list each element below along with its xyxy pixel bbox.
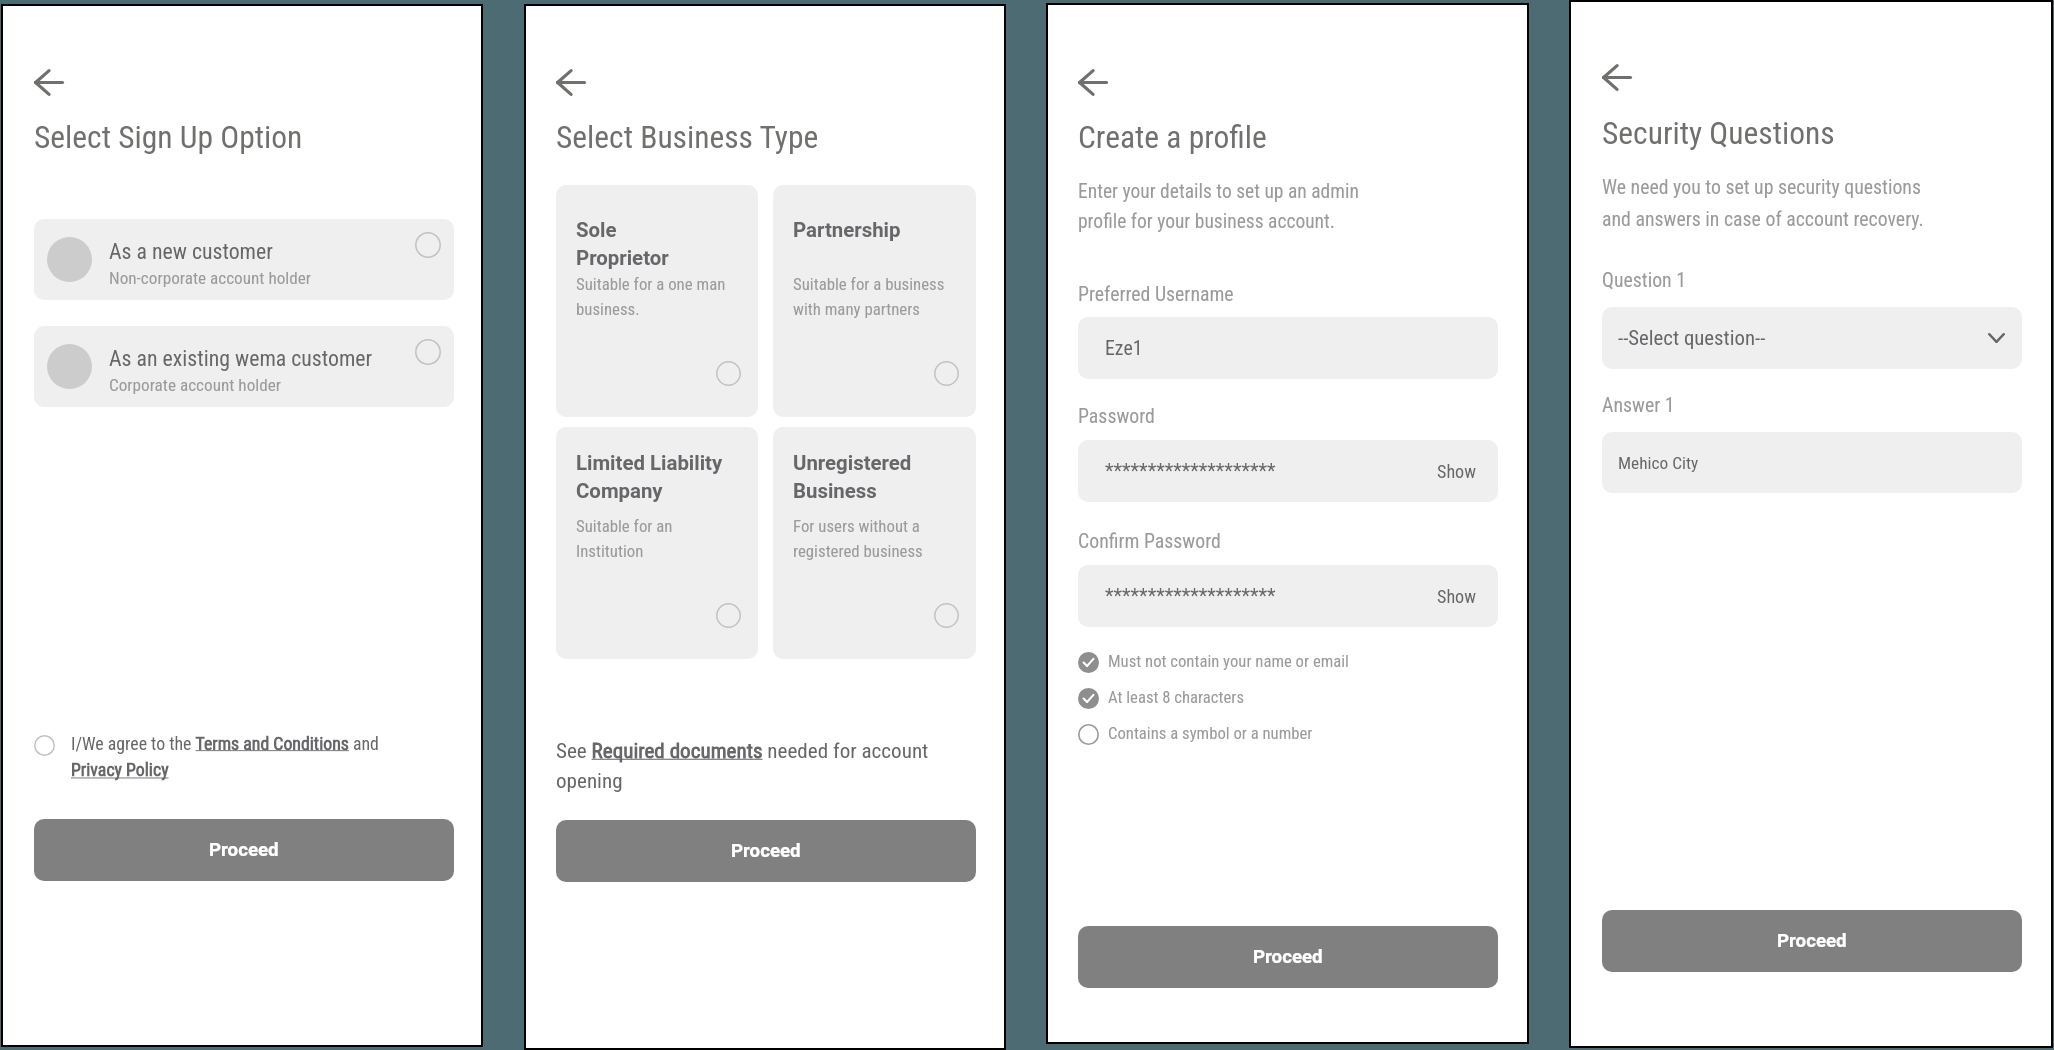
staticText: Preferred Username bbox=[1078, 283, 1234, 306]
button[interactable]: Back bbox=[34, 69, 63, 96]
button[interactable]: Select option bbox=[716, 361, 741, 386]
button[interactable]: Sole Proprietor bbox=[556, 185, 758, 417]
staticText: As a new customer bbox=[109, 239, 273, 265]
staticText: For users without a registered business bbox=[793, 516, 970, 561]
staticText: Must not contain your name or email bbox=[1108, 652, 1349, 672]
button[interactable]: Back bbox=[556, 69, 585, 96]
button[interactable]: Unregistered Business bbox=[773, 427, 976, 659]
staticText: At least 8 characters bbox=[1108, 688, 1245, 708]
staticText: Proceed bbox=[209, 839, 279, 861]
button[interactable]: Select option bbox=[716, 603, 741, 628]
staticText: Answer 1 bbox=[1602, 394, 1675, 417]
staticText: We need you to set up security questions… bbox=[1602, 176, 1924, 231]
staticText: Show bbox=[1437, 461, 1476, 482]
staticText: --Select question-- bbox=[1618, 326, 1988, 350]
button[interactable]: Proceed bbox=[556, 820, 976, 882]
button[interactable]: Select option bbox=[415, 232, 441, 258]
button[interactable]: Select option bbox=[934, 603, 959, 628]
button[interactable]: Select option bbox=[934, 361, 959, 386]
staticText: Select Sign Up Option bbox=[34, 119, 303, 156]
staticText: Enter your details to set up an admin pr… bbox=[1078, 180, 1359, 233]
button[interactable]: Select option bbox=[415, 339, 441, 365]
button[interactable]: Contains a symbol or a number bbox=[1078, 716, 1498, 752]
staticText: Non-corporate account holder bbox=[109, 268, 312, 288]
staticText: Eze1 bbox=[1105, 337, 1143, 360]
staticText: Partnership bbox=[793, 218, 901, 242]
staticText: Suitable for a one man business. bbox=[576, 274, 752, 319]
staticText: Mehico City bbox=[1618, 453, 1699, 473]
staticText: Limited Liability Company bbox=[576, 451, 723, 503]
button[interactable]: Proceed bbox=[1078, 926, 1498, 988]
button[interactable]: Select option bbox=[34, 735, 55, 756]
button[interactable]: ******************** bbox=[1078, 565, 1498, 627]
staticText: Contains a symbol or a number bbox=[1108, 724, 1313, 744]
staticText: ******************** bbox=[1105, 585, 1437, 608]
staticText: Corporate account holder bbox=[109, 375, 282, 395]
button[interactable]: Back bbox=[1078, 69, 1107, 96]
staticText: Unregistered Business bbox=[793, 451, 912, 503]
button[interactable]: Proceed bbox=[34, 819, 454, 881]
button[interactable]: Partnership bbox=[773, 185, 976, 417]
other: Expand dropdown bbox=[1988, 333, 2005, 343]
staticText: Suitable for an Institution bbox=[576, 516, 673, 561]
staticText: Suitable for a business with many partne… bbox=[793, 274, 970, 319]
button[interactable]: At least 8 characters bbox=[1078, 680, 1498, 716]
button[interactable]: As an existing wema customer bbox=[34, 326, 454, 407]
button[interactable]: Proceed bbox=[1602, 910, 2022, 972]
button[interactable]: Limited Liability Company bbox=[556, 427, 758, 659]
staticText: Create a profile bbox=[1078, 119, 1267, 156]
button[interactable]: Back bbox=[1602, 64, 1631, 91]
staticText: ******************** bbox=[1105, 460, 1437, 483]
staticText: Security Questions bbox=[1602, 115, 1835, 152]
staticText: Sole Proprietor bbox=[576, 218, 669, 270]
staticText: Proceed bbox=[1777, 930, 1847, 952]
button[interactable]: Eze1 bbox=[1078, 317, 1498, 379]
staticText: Select Business Type bbox=[556, 119, 819, 156]
staticText: Proceed bbox=[731, 840, 801, 862]
staticText: Proceed bbox=[1253, 946, 1323, 968]
button[interactable]: ******************** bbox=[1078, 440, 1498, 502]
staticText: Password bbox=[1078, 405, 1155, 428]
button[interactable]: As a new customer bbox=[34, 219, 454, 300]
button[interactable]: Must not contain your name or email bbox=[1078, 644, 1498, 680]
staticText: Show bbox=[1437, 586, 1476, 607]
staticText: I/We agree to the Terms and Conditions a… bbox=[71, 733, 401, 781]
staticText: See Required documents needed for accoun… bbox=[556, 738, 929, 793]
button[interactable]: Mehico City bbox=[1602, 432, 2022, 493]
staticText: Question 1 bbox=[1602, 269, 1687, 292]
button[interactable]: --Select question-- bbox=[1602, 307, 2022, 369]
staticText: As an existing wema customer bbox=[109, 346, 373, 372]
staticText: Confirm Password bbox=[1078, 530, 1221, 553]
